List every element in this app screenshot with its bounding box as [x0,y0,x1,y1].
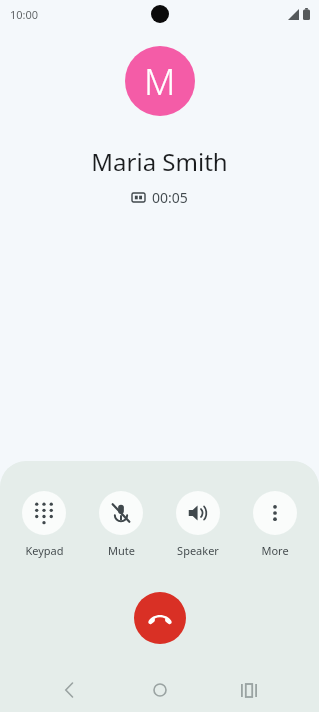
staticText: More [261,543,289,558]
button[interactable]: End call [134,592,186,644]
staticText: Speaker [177,543,219,558]
staticText: M [144,57,176,106]
staticText: Maria Smith [0,145,319,178]
button[interactable]: Keypad [11,489,77,560]
button[interactable]: Speaker [165,489,231,560]
button[interactable]: Back [50,670,90,710]
staticText: 10:00 [10,7,39,22]
button[interactable]: Mute [88,489,154,560]
button[interactable]: Recents [229,670,269,710]
button[interactable]: Home [140,670,180,710]
staticText: Mute [108,543,135,558]
staticText: Keypad [25,543,64,558]
staticText: 00:05 [152,188,188,207]
button[interactable]: More [242,489,308,560]
